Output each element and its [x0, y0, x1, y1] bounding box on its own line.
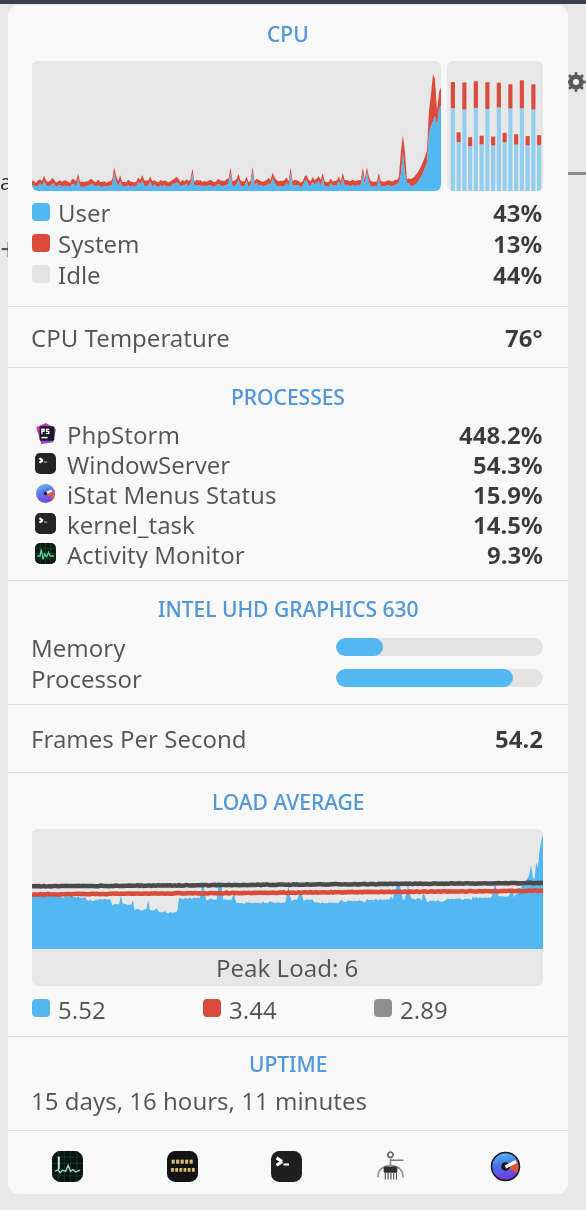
staticText: Frames Per Second: [31, 722, 247, 755]
button[interactable]: Processor: [8, 662, 568, 693]
button[interactable]: PhpStorm: [8, 418, 568, 448]
staticText: 54.3%: [473, 448, 543, 478]
staticText: 2.89: [400, 993, 448, 1023]
staticText: CPU Temperature: [31, 321, 230, 354]
button[interactable]: User: [8, 196, 568, 227]
staticText: 448.2%: [459, 418, 543, 448]
staticText: 5.52: [58, 993, 106, 1023]
staticText: PROCESSES: [231, 383, 345, 412]
button[interactable]: 5.52: [32, 993, 106, 1023]
staticText: User: [58, 196, 111, 227]
button[interactable]: Notifications: [156, 1140, 208, 1192]
staticText: 14.5%: [473, 508, 543, 538]
button[interactable]: Terminal: [260, 1140, 312, 1192]
staticText: kernel_task: [67, 508, 195, 538]
staticText: 76°: [505, 321, 543, 354]
staticText: a: [0, 168, 12, 197]
staticText: iStat Menus Status: [67, 478, 277, 508]
staticText: Memory: [31, 631, 126, 662]
button[interactable]: Activity Monitor: [8, 538, 568, 568]
button[interactable]: Frames Per Second: [8, 705, 568, 772]
staticText: WindowServer: [67, 448, 231, 478]
staticText: INTEL UHD GRAPHICS 630: [158, 595, 419, 624]
button[interactable]: iStat Menus Status: [8, 478, 568, 508]
staticText: Processor: [31, 662, 142, 693]
staticText: 44%: [493, 258, 543, 289]
staticText: Idle: [58, 258, 101, 289]
staticText: Activity Monitor: [67, 538, 245, 568]
staticText: PhpStorm: [67, 418, 180, 448]
staticText: 43%: [493, 196, 543, 227]
button[interactable]: 3.44: [203, 993, 277, 1023]
button[interactable]: System: [8, 227, 568, 258]
button[interactable]: WindowServer: [8, 448, 568, 478]
other: Settings: [566, 72, 586, 92]
button[interactable]: CPU Temperature: [8, 307, 568, 367]
staticText: Peak Load: 6: [216, 951, 359, 984]
staticText: 9.3%: [487, 538, 543, 568]
staticText: 15 days, 16 hours, 11 minutes: [31, 1084, 367, 1117]
button[interactable]: Hardware: [364, 1140, 416, 1192]
button[interactable]: 2.89: [374, 993, 448, 1023]
staticText: CPU: [267, 20, 309, 49]
staticText: +: [0, 228, 18, 269]
button[interactable]: Activity Monitor: [41, 1140, 93, 1192]
button[interactable]: kernel_task: [8, 508, 568, 538]
staticText: 15.9%: [473, 478, 543, 508]
staticText: 3.44: [229, 993, 277, 1023]
button[interactable]: Memory: [8, 631, 568, 662]
staticText: LOAD AVERAGE: [212, 788, 365, 817]
staticText: 13%: [493, 227, 543, 258]
staticText: UPTIME: [249, 1050, 328, 1079]
button[interactable]: Idle: [8, 258, 568, 289]
staticText: System: [58, 227, 140, 258]
button[interactable]: iStat Menus: [479, 1140, 531, 1192]
staticText: 54.2: [495, 722, 543, 755]
